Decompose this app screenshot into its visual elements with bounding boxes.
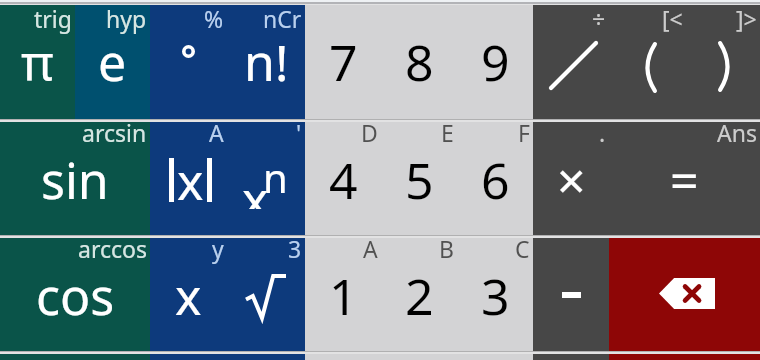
button[interactable]: Delete xyxy=(609,238,760,351)
staticText: arccos xyxy=(78,233,147,264)
staticText: π xyxy=(21,28,54,96)
button[interactable]: trig xyxy=(0,5,75,119)
button[interactable]: F xyxy=(457,122,533,235)
button[interactable]: nCr xyxy=(227,5,305,119)
button[interactable]: E xyxy=(381,122,457,235)
button[interactable]: A xyxy=(305,238,381,351)
staticText: 1 xyxy=(329,262,358,330)
button[interactable]: arcsin xyxy=(0,122,150,235)
staticText: [< xyxy=(662,3,683,34)
staticText: trig xyxy=(34,3,72,34)
staticText: A xyxy=(363,233,378,264)
button[interactable]: B xyxy=(381,238,457,351)
staticText: x xyxy=(175,262,202,330)
staticText: E xyxy=(441,117,454,148)
staticText: n! xyxy=(244,28,289,96)
button[interactable]: Divide xyxy=(533,5,609,119)
button[interactable]: Degrees xyxy=(150,5,227,119)
staticText: ]> xyxy=(736,3,757,34)
button[interactable]: y xyxy=(150,238,227,351)
button[interactable]: 7 xyxy=(305,5,381,119)
staticText: 7 xyxy=(329,28,358,96)
staticText: D xyxy=(361,117,378,148)
staticText: A xyxy=(209,117,224,148)
button[interactable]: x to the power n xyxy=(227,122,305,235)
button[interactable]: 8 xyxy=(381,5,457,119)
staticText: B xyxy=(439,233,454,264)
staticText: ' xyxy=(296,117,302,148)
staticText: 4 xyxy=(329,146,358,214)
staticText: 3 xyxy=(288,233,302,264)
button[interactable]: Left bracket xyxy=(609,5,686,119)
button[interactable]: Right bracket xyxy=(686,5,760,119)
staticText: nCr xyxy=(263,3,302,34)
staticText: . xyxy=(599,117,606,148)
button[interactable]: Square root xyxy=(227,238,305,351)
button[interactable]: 9 xyxy=(457,5,533,119)
staticText: Ans xyxy=(717,117,757,148)
staticText: e xyxy=(98,28,127,96)
staticText: hyp xyxy=(106,3,147,34)
staticText: 8 xyxy=(405,28,434,96)
staticText: C xyxy=(515,233,530,264)
staticText: x xyxy=(177,147,204,215)
staticText: × xyxy=(557,146,586,214)
staticText: x xyxy=(242,165,269,209)
staticText: cos xyxy=(36,262,115,330)
staticText: sin xyxy=(41,146,109,214)
button[interactable]: Absolute value xyxy=(150,122,227,235)
staticText: 6 xyxy=(481,146,510,214)
button[interactable]: Minus xyxy=(533,238,609,351)
staticText: n xyxy=(263,150,288,194)
staticText: = xyxy=(670,146,699,214)
button[interactable]: C xyxy=(457,238,533,351)
button[interactable]: D xyxy=(305,122,381,235)
button[interactable]: Ans xyxy=(609,122,760,235)
button[interactable]: arccos xyxy=(0,238,150,351)
staticText: arcsin xyxy=(82,117,147,148)
staticText: Rand xyxy=(246,352,302,358)
staticText: 9 xyxy=(481,28,510,96)
staticText: 2 xyxy=(405,262,434,330)
staticText: 5 xyxy=(405,146,434,214)
staticText: F xyxy=(518,117,530,148)
staticText: 3 xyxy=(481,262,510,330)
staticText: % xyxy=(204,3,224,34)
staticText: ÷ xyxy=(592,3,606,34)
button[interactable]: hyp xyxy=(75,5,150,119)
staticText: y xyxy=(212,233,224,264)
staticText: arctan xyxy=(78,352,147,358)
button[interactable]: . xyxy=(533,122,609,235)
